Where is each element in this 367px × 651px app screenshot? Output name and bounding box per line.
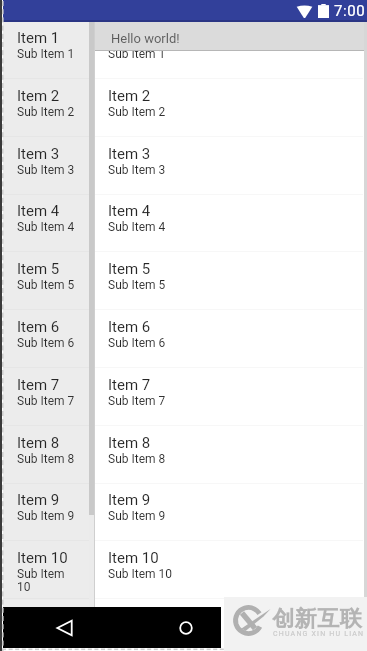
button[interactable]: Item 2 <box>95 79 363 137</box>
button[interactable]: Item 7 <box>3 368 89 426</box>
staticText: Item 5 <box>108 260 151 278</box>
button[interactable]: Item 11 <box>95 599 363 607</box>
staticText: Sub Item 7 <box>17 394 75 408</box>
button[interactable]: Item 10 <box>95 541 363 599</box>
button[interactable]: Item 9 <box>95 483 363 541</box>
staticText: Item 6 <box>108 318 151 336</box>
staticText: Sub Item 3 <box>108 163 166 177</box>
staticText: Item 5 <box>17 260 60 278</box>
staticText: Item 4 <box>17 202 60 220</box>
staticText: Item 2 <box>17 87 60 105</box>
staticText: Item 6 <box>17 318 60 336</box>
staticText: 7:00 <box>334 2 366 20</box>
staticText: Sub Item 7 <box>108 394 166 408</box>
staticText: Item 8 <box>108 434 151 452</box>
staticText: Sub Item 3 <box>17 163 75 177</box>
staticText: Sub Item 5 <box>17 278 75 292</box>
button[interactable]: Item 8 <box>3 426 89 484</box>
staticText: Sub Item 10 <box>108 567 172 581</box>
button[interactable]: Item 4 <box>3 194 89 252</box>
staticText: Item 9 <box>17 491 60 509</box>
button[interactable]: Item 9 <box>3 483 89 541</box>
staticText: Sub Item 2 <box>108 105 166 119</box>
staticText: Sub Item 4 <box>17 220 75 234</box>
staticText: Hello world! <box>111 31 180 46</box>
button[interactable]: Home <box>174 607 198 648</box>
staticText: Item 10 <box>108 549 159 567</box>
staticText: Sub Item 6 <box>108 336 166 350</box>
staticText: Sub Item 5 <box>108 278 166 292</box>
staticText: Item 4 <box>108 202 151 220</box>
staticText: Item 3 <box>17 145 60 163</box>
staticText: Sub Item 9 <box>108 509 166 523</box>
staticText: Sub Item 10 <box>17 567 78 594</box>
button[interactable]: Item 6 <box>95 310 363 368</box>
staticText: Item 10 <box>17 549 68 567</box>
button[interactable]: Item 1 <box>3 22 89 79</box>
staticText: Item 9 <box>108 491 151 509</box>
staticText: Item 8 <box>17 434 60 452</box>
staticText: Sub Item 9 <box>17 509 75 523</box>
button[interactable]: Item 5 <box>95 252 363 310</box>
button[interactable]: Item 7 <box>95 368 363 426</box>
staticText: Sub Item 2 <box>17 105 75 119</box>
button[interactable]: Back <box>53 607 77 648</box>
button[interactable]: Item 4 <box>95 194 363 252</box>
button[interactable]: Item 8 <box>95 426 363 484</box>
staticText: Sub Item 8 <box>108 452 166 466</box>
staticText: Item 2 <box>108 87 151 105</box>
staticText: Sub Item 4 <box>108 220 166 234</box>
staticText: Sub Item 8 <box>17 452 75 466</box>
staticText: Item 7 <box>17 376 60 394</box>
button[interactable]: Item 3 <box>95 137 363 195</box>
button[interactable]: Item 2 <box>3 79 89 137</box>
button[interactable]: Item 6 <box>3 310 89 368</box>
staticText: Item 1 <box>17 29 60 47</box>
button[interactable]: Item 5 <box>3 252 89 310</box>
button[interactable]: Item 10 <box>3 541 89 599</box>
staticText: CHUANG XIN HU LIAN <box>273 630 365 638</box>
staticText: Sub Item 1 <box>108 47 166 61</box>
staticText: Sub Item 1 <box>17 47 75 61</box>
button[interactable]: Item 1 <box>95 22 363 79</box>
staticText: Item 7 <box>108 376 151 394</box>
staticText: 创新互联 <box>272 605 362 633</box>
button[interactable]: Item 3 <box>3 137 89 195</box>
staticText: Item 1 <box>108 29 151 47</box>
staticText: Item 3 <box>108 145 151 163</box>
staticText: Sub Item 6 <box>17 336 75 350</box>
